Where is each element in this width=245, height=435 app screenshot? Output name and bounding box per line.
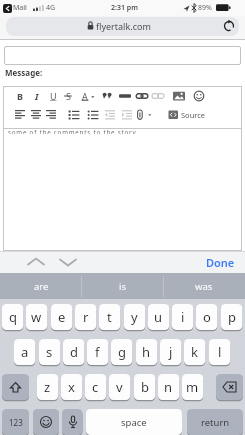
staticText: was	[195, 280, 213, 293]
staticText: is	[119, 280, 127, 293]
button[interactable]: 123	[2, 409, 29, 435]
button[interactable]	[13, 108, 27, 122]
button[interactable]: z	[37, 374, 58, 402]
staticText: U	[50, 90, 57, 102]
staticText: I	[35, 90, 39, 102]
button[interactable]	[4, 46, 241, 65]
button[interactable]	[192, 89, 206, 103]
staticText: o	[203, 308, 211, 326]
button[interactable]	[172, 89, 186, 103]
button[interactable]: r	[75, 304, 96, 332]
button[interactable]: i	[172, 304, 193, 332]
staticText: s	[46, 343, 53, 361]
button[interactable]	[44, 108, 58, 122]
staticText: m	[186, 378, 199, 396]
staticText: j	[169, 343, 173, 361]
staticText: z	[44, 378, 51, 396]
button[interactable]	[29, 108, 43, 122]
button[interactable]: q	[2, 304, 23, 332]
staticText: x	[68, 378, 75, 396]
staticText: are	[34, 280, 49, 293]
staticText: return	[201, 416, 230, 429]
button[interactable]: Done	[200, 251, 240, 273]
button[interactable]: space	[86, 409, 182, 435]
staticText: Done	[206, 255, 235, 270]
staticText: p	[228, 308, 236, 326]
button[interactable]	[58, 255, 80, 269]
button[interactable]: b	[134, 374, 155, 402]
button[interactable]: p	[221, 304, 242, 332]
button[interactable]	[103, 108, 117, 122]
staticText: v	[116, 378, 123, 396]
staticText: B	[17, 90, 23, 102]
button[interactable]: y	[124, 304, 145, 332]
staticText: f	[95, 343, 100, 361]
button[interactable]	[135, 108, 145, 122]
staticText: 2:31 pm	[111, 3, 138, 13]
button[interactable]: B	[13, 89, 27, 103]
button[interactable]: k	[184, 339, 205, 367]
button[interactable]: m	[182, 374, 203, 402]
button[interactable]: g	[111, 339, 132, 367]
staticText: Source	[181, 110, 206, 120]
button[interactable]	[62, 409, 83, 435]
button[interactable]: a	[14, 339, 35, 367]
button[interactable]: return	[187, 409, 243, 435]
button[interactable]: w	[26, 304, 47, 332]
staticText: h	[142, 343, 151, 361]
button[interactable]: was	[163, 273, 245, 299]
button[interactable]: x	[61, 374, 82, 402]
button[interactable]: n	[158, 374, 179, 402]
staticText: Message:	[5, 67, 43, 78]
button[interactable]: t	[99, 304, 120, 332]
staticText: n	[164, 378, 173, 396]
button[interactable]	[135, 89, 149, 103]
staticText: 89%	[198, 3, 212, 13]
button[interactable]: S	[61, 89, 75, 103]
staticText: q	[9, 308, 17, 326]
button[interactable]	[216, 374, 243, 402]
button[interactable]	[86, 108, 100, 122]
button[interactable]	[100, 89, 114, 103]
staticText: r	[83, 308, 89, 326]
staticText: w	[31, 308, 42, 326]
button[interactable]: I	[30, 89, 44, 103]
button[interactable]	[118, 89, 132, 103]
button[interactable]	[223, 20, 235, 32]
staticText: t	[107, 308, 112, 326]
button[interactable]: d	[63, 339, 84, 367]
button[interactable]: f	[87, 339, 108, 367]
button[interactable]: s	[39, 339, 60, 367]
staticText: A	[82, 90, 88, 102]
staticText: c	[92, 378, 99, 396]
staticText: flyertalk.com	[96, 20, 151, 32]
button[interactable]: v	[109, 374, 130, 402]
button[interactable]	[2, 374, 29, 402]
button[interactable]: u	[148, 304, 169, 332]
staticText: l	[218, 343, 222, 361]
button[interactable]	[33, 409, 59, 435]
staticText: some of the comments to the story	[8, 128, 137, 134]
button[interactable]	[26, 255, 48, 269]
staticText: g	[118, 343, 126, 361]
button[interactable]: U	[46, 89, 60, 103]
button[interactable]	[67, 108, 81, 122]
button[interactable]: o	[196, 304, 217, 332]
staticText: 4G	[46, 3, 56, 13]
button[interactable]	[120, 108, 134, 122]
button[interactable]	[151, 89, 165, 103]
button[interactable]: are	[0, 273, 82, 299]
staticText: d	[70, 343, 78, 361]
button[interactable]	[6, 17, 239, 36]
button[interactable]: Source	[168, 108, 212, 122]
button[interactable]: c	[85, 374, 106, 402]
staticText: Mail	[13, 3, 27, 13]
button[interactable]: e	[51, 304, 72, 332]
staticText: space	[121, 416, 147, 429]
button[interactable]: l	[209, 339, 230, 367]
button[interactable]: is	[82, 273, 164, 299]
staticText: y	[131, 308, 138, 326]
button[interactable]: j	[160, 339, 181, 367]
button[interactable]: h	[136, 339, 157, 367]
button[interactable]: A	[78, 89, 92, 103]
